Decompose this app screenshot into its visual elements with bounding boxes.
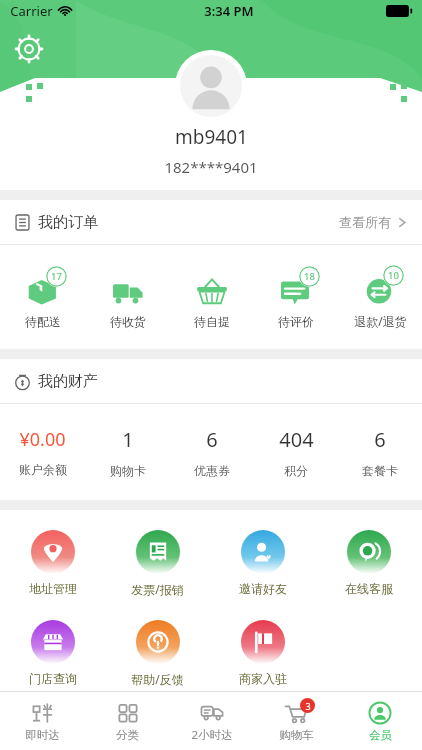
staticText: 购物卡 bbox=[110, 463, 146, 478]
button[interactable]: 3 bbox=[254, 692, 338, 750]
button[interactable]: 门店查询 bbox=[0, 608, 105, 698]
staticText: 404 bbox=[279, 426, 314, 453]
button[interactable]: 在线客服 bbox=[316, 518, 422, 608]
button[interactable]: 404 bbox=[254, 404, 338, 500]
staticText: 待自提 bbox=[194, 314, 230, 329]
staticText: 待收货 bbox=[110, 314, 146, 329]
staticText: 我的财产 bbox=[38, 372, 98, 391]
staticText: 1 bbox=[122, 426, 134, 453]
button[interactable]: 会员 bbox=[338, 692, 422, 750]
button[interactable]: 邀请好友 bbox=[210, 518, 316, 608]
staticText: 会员 bbox=[369, 728, 392, 742]
staticText: 17 bbox=[51, 270, 62, 283]
button[interactable]: 我的订单 bbox=[0, 200, 422, 244]
staticText: 积分 bbox=[284, 463, 308, 478]
button[interactable]: 帮助/反馈 bbox=[105, 608, 210, 698]
staticText: 待评价 bbox=[278, 314, 314, 329]
staticText: 优惠券 bbox=[194, 463, 230, 478]
button[interactable]: 待自提 bbox=[170, 245, 254, 349]
button[interactable]: 发票/报销 bbox=[105, 518, 210, 608]
button[interactable]: 待收货 bbox=[85, 245, 170, 349]
staticText: 分类 bbox=[116, 728, 139, 742]
button[interactable]: 1 bbox=[85, 404, 170, 500]
button[interactable]: 2小时达 bbox=[170, 692, 254, 750]
staticText: 即时达 bbox=[25, 728, 60, 742]
button[interactable]: 18 bbox=[254, 245, 338, 349]
staticText: 182****9401 bbox=[164, 157, 258, 177]
staticText: ¥0.00 bbox=[19, 427, 66, 452]
button[interactable]: 10 bbox=[338, 245, 422, 349]
button[interactable]: 商家入驻 bbox=[210, 608, 316, 698]
staticText: mb9401 bbox=[175, 124, 248, 150]
staticText: 发票/报销 bbox=[131, 581, 184, 597]
staticText: 购物车 bbox=[279, 728, 314, 742]
button[interactable]: 6 bbox=[338, 404, 422, 500]
button[interactable]: 我的财产 bbox=[0, 359, 422, 403]
staticText: 我的订单 bbox=[38, 213, 98, 232]
staticText: 地址管理 bbox=[29, 581, 77, 596]
button[interactable]: 地址管理 bbox=[0, 518, 105, 608]
staticText: 邀请好友 bbox=[239, 581, 287, 596]
staticText: 商家入驻 bbox=[239, 671, 287, 686]
button[interactable]: Settings bbox=[12, 32, 46, 66]
button[interactable]: ¥0.00 bbox=[0, 404, 85, 500]
staticText: 待配送 bbox=[25, 314, 61, 329]
staticText: 2小时达 bbox=[191, 727, 233, 743]
button[interactable]: 即时达 bbox=[0, 692, 85, 750]
button[interactable]: 分类 bbox=[85, 692, 170, 750]
staticText: 账户余额 bbox=[19, 462, 67, 477]
button[interactable]: 6 bbox=[170, 404, 254, 500]
staticText: 门店查询 bbox=[29, 671, 77, 686]
staticText: 套餐卡 bbox=[362, 463, 398, 478]
staticText: Carrier bbox=[10, 2, 53, 20]
staticText: 退款/退货 bbox=[354, 313, 407, 329]
staticText: 帮助/反馈 bbox=[131, 671, 184, 687]
button[interactable]: 17 bbox=[0, 245, 85, 349]
staticText: 在线客服 bbox=[345, 581, 393, 596]
staticText: 10 bbox=[388, 269, 399, 282]
staticText: 3:34 PM bbox=[204, 2, 254, 20]
staticText: 3 bbox=[305, 700, 311, 712]
staticText: 6 bbox=[374, 426, 386, 453]
staticText: 6 bbox=[206, 426, 218, 453]
button[interactable]: Avatar bbox=[175, 50, 247, 122]
staticText: 查看所有 bbox=[339, 214, 391, 230]
staticText: 18 bbox=[304, 270, 315, 283]
